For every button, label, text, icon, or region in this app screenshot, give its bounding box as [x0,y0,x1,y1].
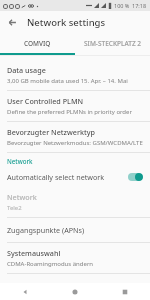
button[interactable]: Recent apps [100,283,150,300]
staticText: Bevorzugter Netzwerkmodus: GSM/WCDMA/LTE [7,139,143,147]
button[interactable]: Network [0,187,150,217]
button[interactable]: Automatically select network [0,167,150,187]
button[interactable]: SIM-STECKPLATZ 2 [75,33,150,53]
button[interactable]: Back [0,283,50,300]
staticText: CDMA-Roamingmodus ändern [7,260,94,268]
staticText: Bevorzugter Netzwerktyp [7,127,95,137]
button[interactable]: Zugangspunkte (APNs) [0,218,150,242]
staticText: COMVIQ [24,39,51,48]
staticText: Network [7,192,37,202]
button[interactable]: Home [50,283,100,300]
staticText: 17:18 [132,2,147,9]
staticText: Network [7,157,33,165]
staticText: SIM-STECKPLATZ 2 [84,39,142,48]
staticText: Automatically select network [7,172,105,182]
button[interactable]: Systemauswahl [0,243,150,273]
staticText: 3,00 GB mobile data used 15. Apr. – 14. … [7,77,128,85]
staticText: Systemauswahl [7,248,61,258]
button[interactable]: User Controlled PLMN [0,91,150,121]
button[interactable]: Data usage [0,60,150,90]
staticText: 100 % [114,2,130,9]
staticText: User Controlled PLMN [7,96,84,106]
staticText: Data usage [7,65,46,75]
staticText: Network settings [27,16,106,29]
staticText: Zugangspunkte (APNs) [7,225,85,235]
staticText: Define the preferred PLMNs in priority o… [7,108,132,116]
button[interactable]: COMVIQ [0,33,75,53]
button[interactable]: Bevorzugter Netzwerktyp [0,122,150,152]
button[interactable]: Back [4,14,20,30]
staticText: Tele2 [7,204,22,212]
